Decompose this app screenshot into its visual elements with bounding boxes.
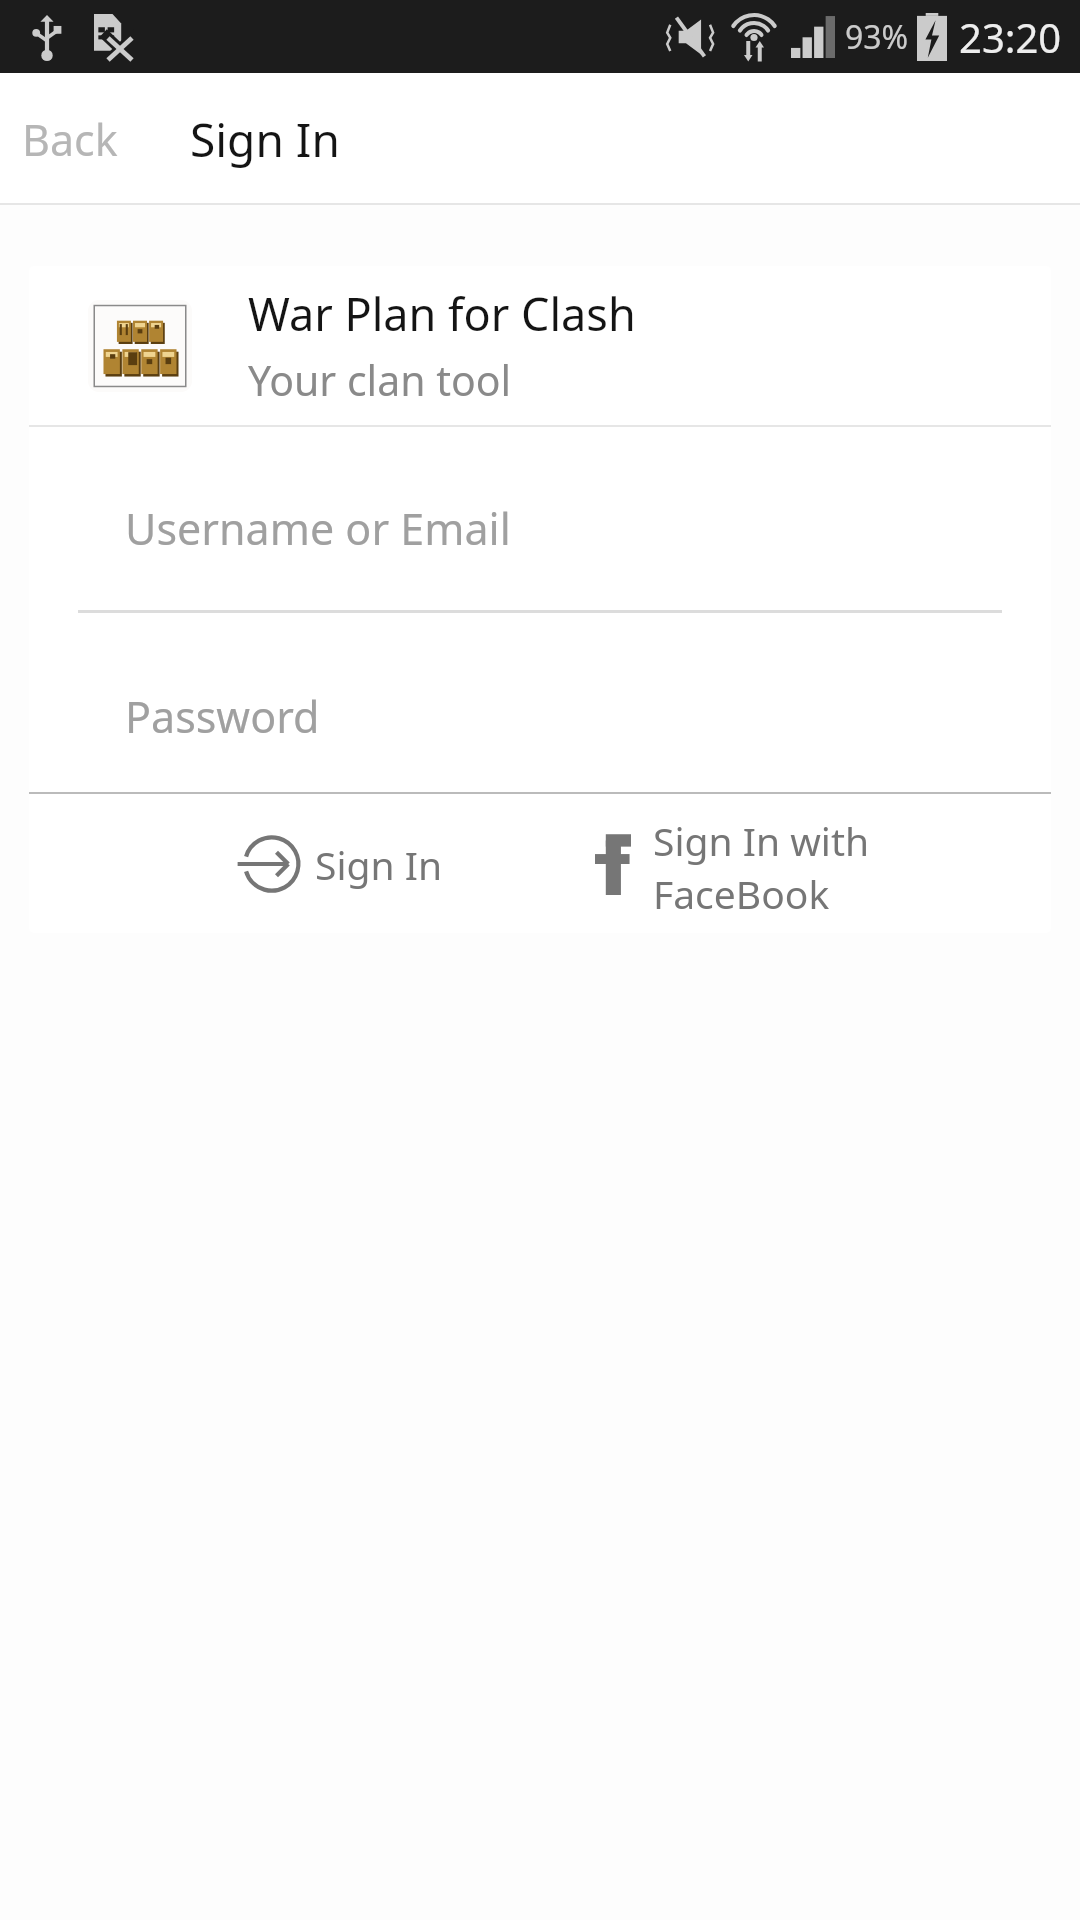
- button[interactable]: Username or Email: [29, 495, 1051, 578]
- button[interactable]: Sign In with FaceBook: [587, 794, 1051, 933]
- staticText: Sign In with FaceBook: [653, 814, 1043, 913]
- button[interactable]: Password: [29, 683, 1051, 766]
- button[interactable]: Sign In: [229, 813, 451, 915]
- staticText: Username or Email: [125, 499, 511, 558]
- staticText: Sign In: [315, 838, 443, 891]
- staticText: Back: [22, 110, 118, 169]
- other: Sign In with FaceBook: [595, 833, 631, 895]
- staticText: Sign In: [190, 108, 340, 171]
- staticText: War Plan for Clash: [248, 283, 636, 344]
- other: Sign In: [237, 833, 299, 895]
- staticText: 93%: [845, 15, 909, 59]
- staticText: Your clan tool: [248, 352, 512, 408]
- button[interactable]: Back: [0, 84, 144, 195]
- staticText: 23:20: [959, 10, 1062, 64]
- staticText: Password: [125, 687, 320, 746]
